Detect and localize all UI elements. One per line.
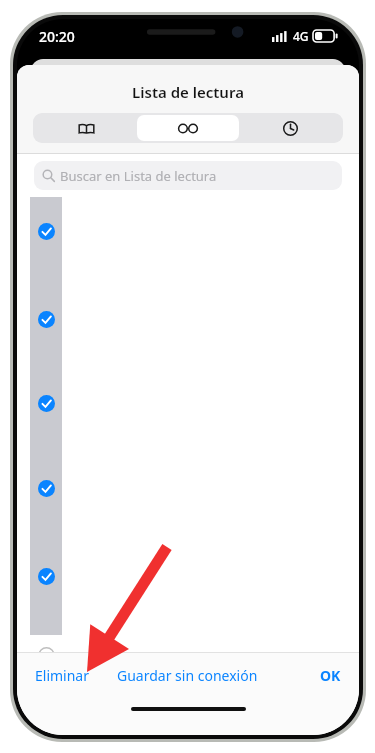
staticText: Eliminar [35, 666, 89, 685]
staticText: Lista de lectura [132, 82, 244, 102]
staticText: Buscar en Lista de lectura [60, 167, 217, 185]
staticText: 4G [293, 28, 309, 44]
button[interactable]: Seleccionado [38, 311, 55, 328]
button[interactable]: Historial [239, 115, 341, 141]
staticText: OK [320, 666, 341, 685]
staticText: Guardar sin conexión [117, 666, 258, 685]
staticText: 20:20 [39, 27, 75, 46]
button[interactable]: Marcadores [35, 115, 137, 141]
button[interactable]: Lista de lectura [137, 115, 239, 141]
button[interactable]: Seleccionado [38, 395, 55, 412]
button[interactable]: Seleccionado [38, 223, 55, 240]
button[interactable]: Guardar sin conexión [117, 653, 258, 697]
button[interactable]: OK [258, 653, 359, 697]
button[interactable]: Eliminar [17, 653, 117, 697]
button[interactable]: Seleccionado [38, 480, 55, 497]
button[interactable]: Seleccionado [38, 568, 55, 585]
button[interactable]: Buscar en Lista de lectura [34, 161, 342, 190]
